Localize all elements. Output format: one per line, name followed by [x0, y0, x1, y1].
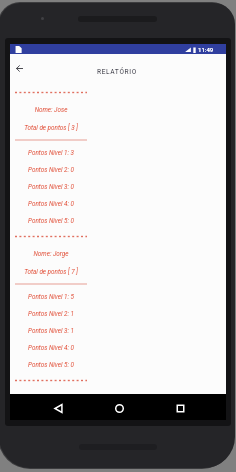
button[interactable]: Home [108, 396, 130, 418]
button[interactable]: Navigate up [15, 64, 24, 73]
staticText: Pontos Nível 4: 0 [15, 344, 87, 351]
staticText: Total de pontos [ 3 ] [15, 124, 87, 131]
staticText: Pontos Nível 1: 5 [15, 293, 87, 300]
staticText: Nome: Jose [15, 106, 87, 113]
staticText: Total de pontos [ 7 ] [15, 268, 87, 275]
button[interactable]: Recent apps [169, 396, 191, 418]
staticText: RELATÓRIO [97, 68, 137, 76]
staticText: Pontos Nível 4: 0 [15, 200, 87, 207]
staticText: Pontos Nível 3: 1 [15, 327, 87, 334]
staticText: Pontos Nível 3: 0 [15, 183, 87, 190]
staticText: Nome: Jorge [15, 250, 87, 257]
staticText: Pontos Nível 1: 3 [15, 149, 87, 156]
staticText: Pontos Nível 2: 0 [15, 166, 87, 173]
staticText: Pontos Nível 5: 0 [15, 361, 87, 368]
button[interactable]: Back [47, 396, 69, 418]
staticText: 11:49 [198, 46, 214, 53]
staticText: Pontos Nível 2: 1 [15, 310, 87, 317]
staticText: Pontos Nível 5: 0 [15, 217, 87, 224]
